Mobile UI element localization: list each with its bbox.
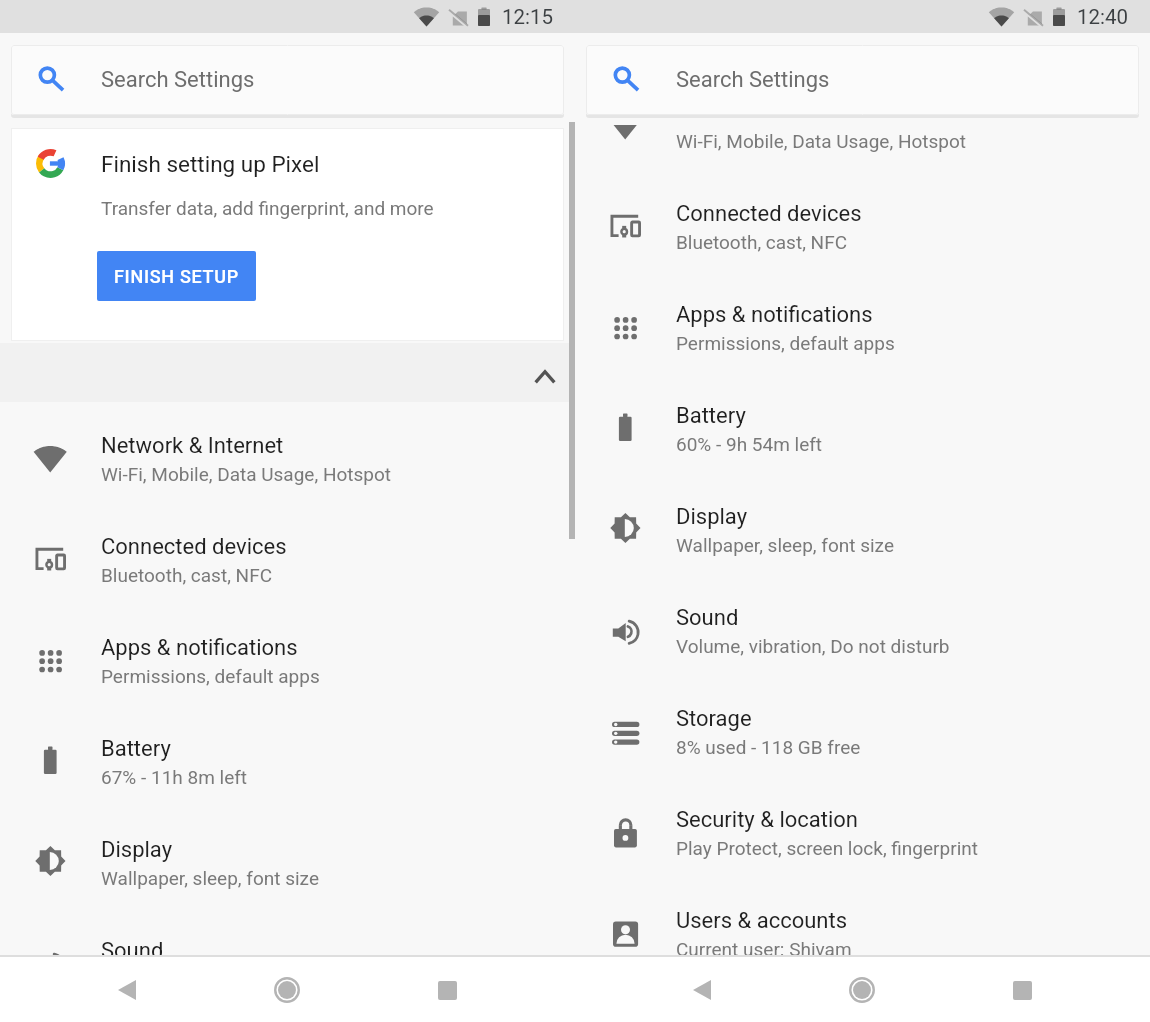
staticText: Battery xyxy=(676,403,746,429)
button[interactable]: Connected devices xyxy=(575,170,1150,271)
staticText: Connected devices xyxy=(101,534,287,560)
button[interactable]: FINISH SETUP xyxy=(97,251,256,301)
button[interactable]: Network & Internet xyxy=(0,402,575,503)
button[interactable]: Connected devices xyxy=(0,503,575,604)
staticText: Wallpaper, sleep, font size xyxy=(101,867,319,889)
staticText: Battery xyxy=(101,736,171,762)
button[interactable]: Storage xyxy=(575,675,1150,776)
staticText: Display xyxy=(676,504,748,530)
button[interactable]: Home xyxy=(254,956,320,1022)
button[interactable]: Back xyxy=(669,956,735,1022)
staticText: Play Protect, screen lock, fingerprint xyxy=(676,837,978,859)
staticText: Sound xyxy=(101,938,164,964)
staticText: Search Settings xyxy=(101,67,255,93)
staticText: Wi-Fi, Mobile, Data Usage, Hotspot xyxy=(101,463,392,485)
staticText: Permissions, default apps xyxy=(676,332,895,354)
staticText: Users & accounts xyxy=(676,908,848,934)
staticText: Storage xyxy=(676,706,752,732)
button[interactable]: Sound xyxy=(0,907,575,1008)
staticText: 67% - 11h 8m left xyxy=(101,766,248,788)
staticText: Volume, vibration, Do not disturb xyxy=(676,635,950,657)
button[interactable]: Search Settings xyxy=(11,45,564,115)
button[interactable]: Sound xyxy=(575,574,1150,675)
staticText: Search Settings xyxy=(676,67,830,93)
button[interactable]: Battery xyxy=(575,372,1150,473)
staticText: Bluetooth, cast, NFC xyxy=(676,231,848,253)
button[interactable]: Search Settings xyxy=(586,45,1139,115)
button[interactable]: Recents xyxy=(414,956,480,1022)
staticText: Bluetooth, cast, NFC xyxy=(101,564,273,586)
staticText: Finish setting up Pixel xyxy=(101,151,320,177)
staticText: Wi-Fi, Mobile, Data Usage, Hotspot xyxy=(676,130,967,152)
staticText: Security & location xyxy=(676,807,859,833)
staticText: Connected devices xyxy=(676,201,862,227)
staticText: Wallpaper, sleep, font size xyxy=(676,534,894,556)
staticText: Sound xyxy=(676,605,739,631)
button[interactable]: Security & location xyxy=(575,776,1150,877)
staticText: Apps & notifications xyxy=(101,635,298,661)
staticText: Display xyxy=(101,837,173,863)
button[interactable]: Recents xyxy=(989,956,1055,1022)
button[interactable]: Finish setting up Pixel xyxy=(11,128,564,341)
staticText: Current user: Shivam xyxy=(676,938,852,960)
staticText: 60% - 9h 54m left xyxy=(676,433,823,455)
staticText: Network & Internet xyxy=(676,100,859,126)
staticText: Network & Internet xyxy=(101,433,284,459)
button[interactable]: Display xyxy=(0,806,575,907)
button[interactable]: Apps & notifications xyxy=(0,604,575,705)
staticText: 12:15 xyxy=(502,5,554,29)
staticText: FINISH SETUP xyxy=(114,266,239,287)
staticText: 12:40 xyxy=(1077,5,1129,29)
staticText: Apps & notifications xyxy=(676,302,873,328)
staticText: Volume, vibration, Do not disturb xyxy=(101,968,375,990)
button[interactable]: Network & Internet xyxy=(575,69,1150,170)
staticText: 8% used - 118 GB free xyxy=(676,736,861,758)
button[interactable]: Display xyxy=(575,473,1150,574)
staticText: Transfer data, add fingerprint, and more xyxy=(101,197,434,219)
button[interactable]: Users & accounts xyxy=(575,877,1150,978)
button[interactable]: Apps & notifications xyxy=(575,271,1150,372)
button[interactable]: Home xyxy=(829,956,895,1022)
staticText: Permissions, default apps xyxy=(101,665,320,687)
button[interactable]: Collapse suggestions xyxy=(0,343,575,402)
button[interactable]: Battery xyxy=(0,705,575,806)
button[interactable]: Back xyxy=(94,956,160,1022)
